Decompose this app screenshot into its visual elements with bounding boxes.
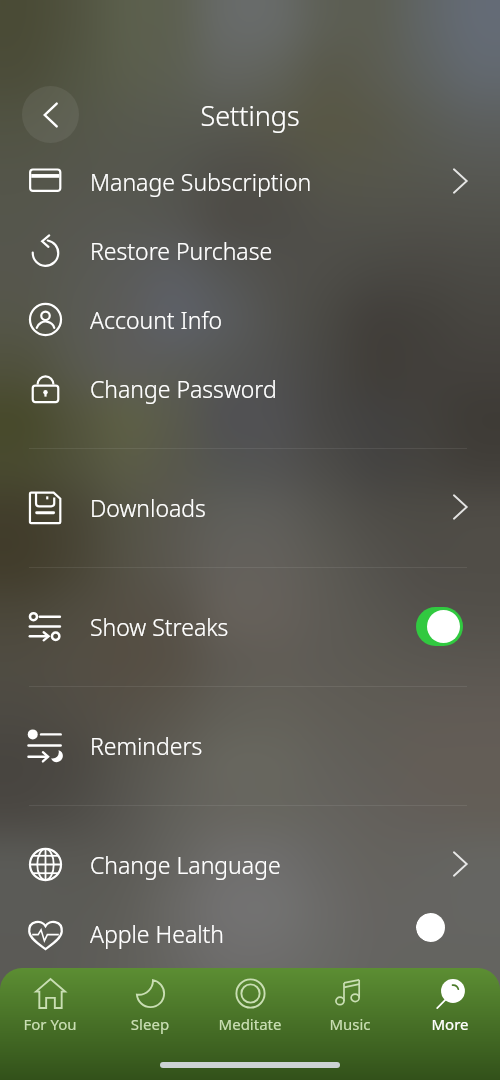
button[interactable]: Sleep	[100, 968, 200, 1048]
staticText: Apple Health	[90, 918, 225, 949]
button[interactable]: Show Streaks	[0, 591, 500, 661]
staticText: Change Password	[90, 373, 277, 404]
button[interactable]: Downloads	[0, 472, 500, 542]
button[interactable]: More	[400, 968, 500, 1048]
staticText: Meditate	[200, 1014, 300, 1034]
staticText: Account Info	[90, 304, 223, 335]
staticText: Music	[300, 1014, 400, 1034]
staticText: Settings	[0, 97, 500, 134]
staticText: Change Language	[90, 849, 281, 880]
staticText: More	[400, 1014, 500, 1034]
button[interactable]: Apple Health	[0, 898, 500, 968]
button[interactable]: Show Streaks toggle	[416, 607, 463, 646]
staticText: Manage Subscription	[90, 166, 312, 197]
staticText: Downloads	[90, 492, 206, 523]
button[interactable]: Restore Purchase	[0, 215, 500, 285]
staticText: Sleep	[100, 1014, 200, 1034]
button[interactable]: Manage Subscription	[0, 146, 500, 216]
button[interactable]: Change Password	[0, 353, 500, 423]
button[interactable]: Music	[300, 968, 400, 1048]
button[interactable]: Account Info	[0, 284, 500, 354]
staticText: Restore Purchase	[90, 235, 273, 266]
button[interactable]: Back	[22, 86, 79, 143]
button[interactable]: Apple Health toggle	[416, 913, 464, 942]
button[interactable]: Meditate	[200, 968, 300, 1048]
staticText: For You	[0, 1014, 100, 1034]
button[interactable]: Reminders	[0, 710, 500, 780]
button[interactable]: For You	[0, 968, 100, 1048]
staticText: Show Streaks	[90, 611, 229, 642]
button[interactable]: Change Language	[0, 829, 500, 899]
staticText: Reminders	[90, 730, 203, 761]
